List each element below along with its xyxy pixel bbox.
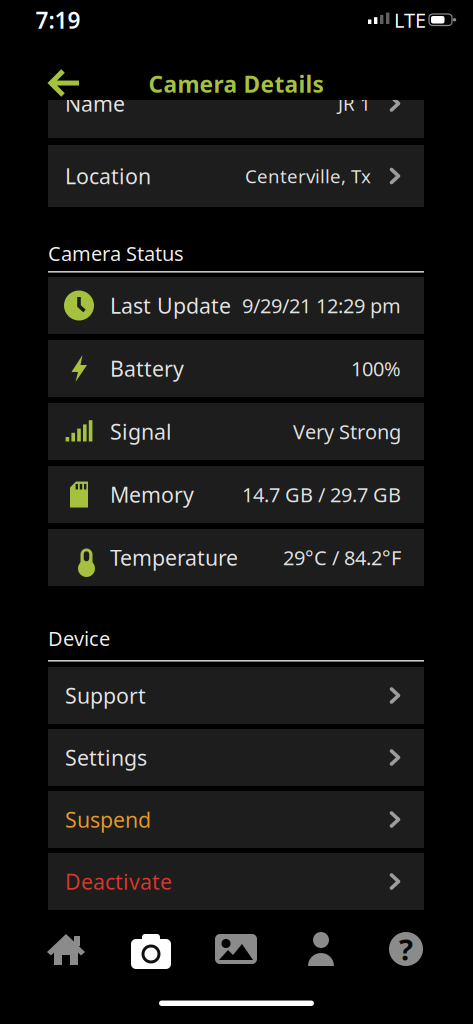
staticText: Memory [110, 480, 194, 509]
staticText: Camera Status [48, 240, 184, 267]
staticText: 100% [351, 355, 401, 382]
staticText: 7:19 [35, 5, 80, 35]
button[interactable]: Photos [193, 921, 278, 977]
staticText: 9/29/21 12:29 pm [242, 292, 401, 319]
staticText: JR 1 [338, 91, 371, 116]
staticText: Very Strong [293, 418, 401, 445]
staticText: Signal [110, 417, 172, 446]
button[interactable]: Support [48, 667, 424, 724]
staticText: Battery [110, 354, 184, 383]
staticText: Device [48, 625, 110, 652]
staticText: Suspend [65, 805, 151, 834]
button[interactable]: Settings [48, 729, 424, 786]
staticText: ? [399, 929, 413, 968]
button[interactable]: Suspend [48, 791, 424, 848]
button[interactable]: Help [363, 921, 448, 977]
button[interactable]: Deactivate [48, 853, 424, 910]
staticText: Settings [65, 743, 147, 772]
button[interactable]: Name [48, 69, 424, 138]
button[interactable]: Location [48, 145, 424, 207]
staticText: Temperature [110, 543, 238, 572]
button[interactable]: Back [48, 68, 82, 98]
button[interactable]: Home [23, 921, 108, 977]
staticText: LTE [394, 7, 426, 33]
staticText: 29°C / 84.2°F [283, 544, 401, 571]
staticText: Centerville, Tx [245, 164, 371, 188]
staticText: 14.7 GB / 29.7 GB [242, 481, 401, 508]
staticText: Location [65, 162, 151, 190]
staticText: Deactivate [65, 867, 172, 896]
staticText: Last Update [110, 291, 231, 320]
button[interactable]: Cameras [108, 921, 193, 977]
staticText: Name [65, 89, 125, 118]
staticText: Camera Details [148, 69, 323, 99]
button[interactable]: Profile [278, 921, 363, 977]
staticText: Support [65, 681, 146, 710]
